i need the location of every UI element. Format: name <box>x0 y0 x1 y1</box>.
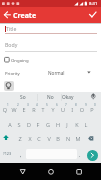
staticText: U <box>59 106 67 114</box>
staticText: J <box>63 121 71 129</box>
staticText: 0 <box>94 103 96 107</box>
staticText: B <box>54 135 62 143</box>
staticText: A <box>6 121 14 129</box>
button[interactable] <box>4 56 28 64</box>
staticText: 6 <box>56 103 58 107</box>
staticText: 5 <box>46 103 48 107</box>
staticText: Ongoing <box>11 57 29 63</box>
staticText: ?123 <box>3 151 12 156</box>
staticText: 8:31 <box>89 1 98 7</box>
staticText: 1 <box>7 103 9 107</box>
staticText: W <box>10 106 18 114</box>
staticText: 8 <box>75 103 77 107</box>
staticText: R <box>30 106 38 114</box>
staticText: C <box>35 135 43 143</box>
staticText: Body <box>5 41 18 48</box>
staticText: E <box>20 106 28 114</box>
staticText: So <box>20 94 26 101</box>
staticText: Create <box>13 11 37 21</box>
button[interactable] <box>87 150 98 161</box>
staticText: V <box>45 135 53 143</box>
button[interactable] <box>47 68 92 76</box>
staticText: I <box>68 106 76 114</box>
button[interactable] <box>71 164 88 180</box>
staticText: 3 <box>27 103 29 107</box>
staticText: F <box>34 121 42 129</box>
staticText: 9 <box>85 103 87 107</box>
staticText: P <box>88 106 96 114</box>
button[interactable] <box>14 164 31 180</box>
staticText: Z <box>16 135 24 143</box>
staticText: , <box>20 151 22 158</box>
staticText: D <box>25 121 33 129</box>
button[interactable] <box>43 164 60 180</box>
staticText: O <box>78 106 86 114</box>
staticText: Y <box>49 106 57 114</box>
staticText: Normal <box>48 70 65 76</box>
staticText: S <box>15 121 23 129</box>
staticText: G <box>44 121 52 129</box>
button[interactable] <box>86 9 100 21</box>
staticText: Priority <box>5 70 20 76</box>
staticText: T <box>39 106 47 114</box>
staticText: Okay <box>62 94 74 101</box>
staticText: 7 <box>65 103 67 107</box>
staticText: M <box>74 135 82 143</box>
button[interactable] <box>4 81 14 91</box>
staticText: K <box>73 121 81 129</box>
staticText: H <box>54 121 62 129</box>
staticText: N <box>64 135 72 143</box>
staticText: L <box>82 121 90 129</box>
staticText: Title <box>6 25 17 32</box>
staticText: 2 <box>17 103 19 107</box>
staticText: X <box>26 135 34 143</box>
staticText: No <box>47 94 54 101</box>
button[interactable] <box>1 9 14 21</box>
staticText: 4 <box>36 103 38 107</box>
staticText: . <box>79 151 81 158</box>
staticText: Q <box>1 106 9 114</box>
